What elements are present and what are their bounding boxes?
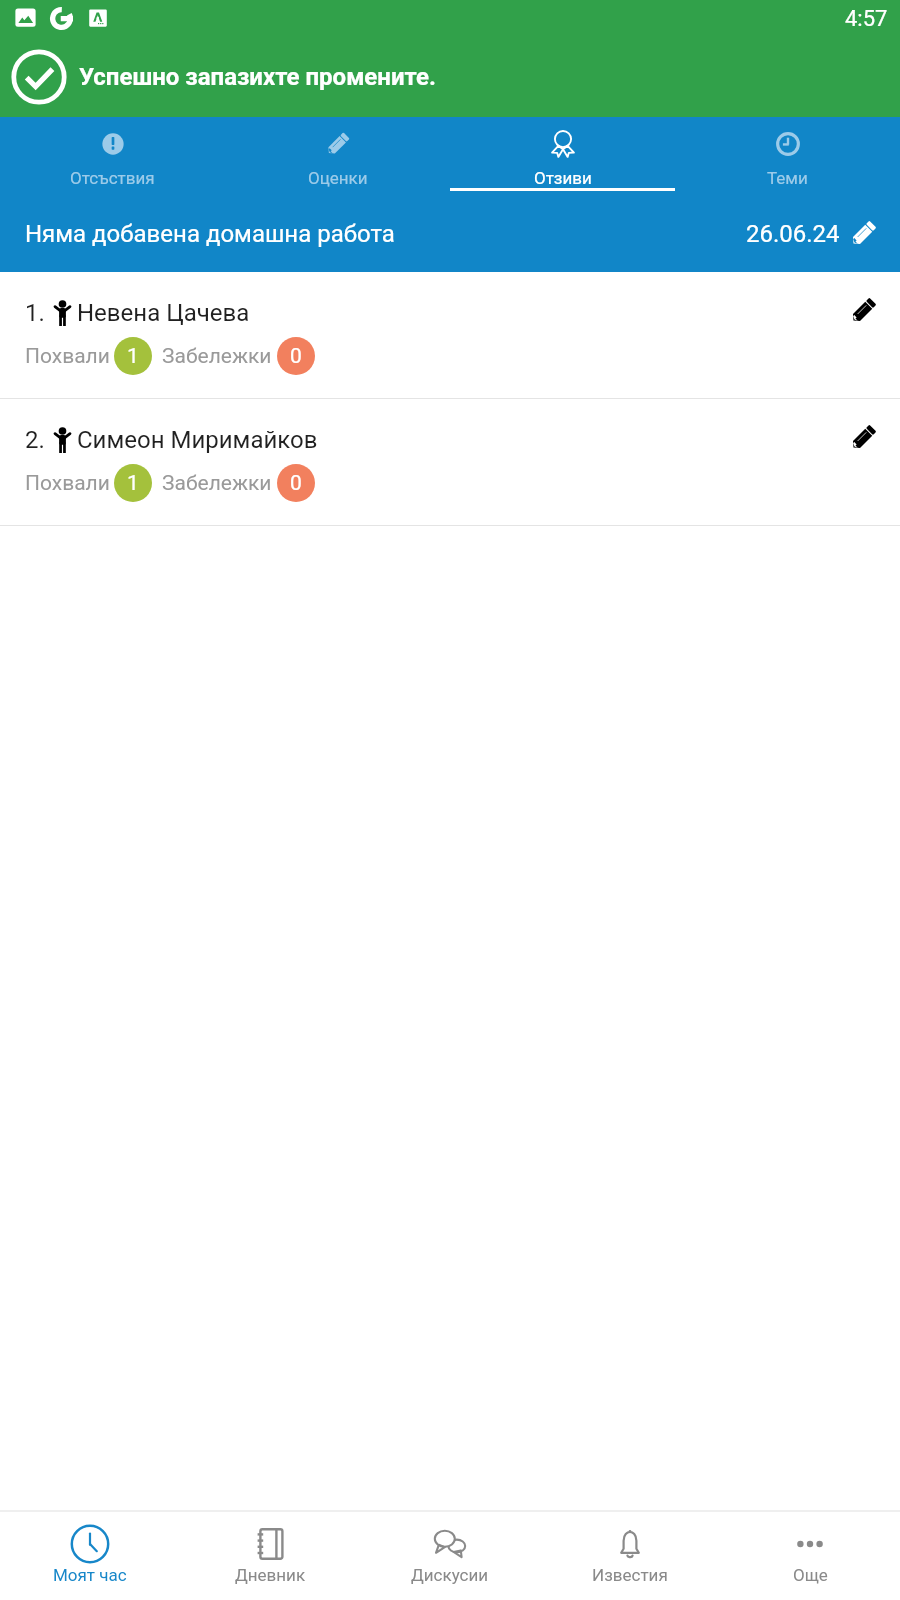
staticText: Похвали: [25, 344, 110, 369]
button[interactable]: Дневник: [180, 1512, 360, 1600]
staticText: Забележки: [162, 471, 272, 496]
button[interactable]: Оценки: [225, 117, 450, 205]
button[interactable]: 1.: [0, 272, 900, 398]
staticText: 0: [290, 344, 302, 369]
button[interactable]: Редактирай: [841, 288, 885, 332]
button[interactable]: Още: [720, 1512, 900, 1600]
staticText: Забележки: [162, 344, 272, 369]
staticText: Няма добавена домашна работа: [25, 220, 395, 248]
button[interactable]: Известия: [540, 1512, 720, 1600]
staticText: 26.06.24: [746, 220, 840, 248]
staticText: Моят час: [53, 1565, 127, 1585]
button[interactable]: Редактирай: [847, 217, 880, 250]
staticText: 2.: [25, 426, 45, 454]
staticText: Теми: [767, 168, 808, 188]
staticText: Отзиви: [534, 168, 592, 188]
button[interactable]: Отзиви: [450, 117, 675, 205]
staticText: Известия: [592, 1565, 668, 1585]
staticText: Дневник: [235, 1565, 306, 1585]
button[interactable]: Отсъствия: [0, 117, 225, 205]
staticText: Оценки: [308, 168, 368, 188]
staticText: Симеон Миримайков: [77, 426, 318, 454]
staticText: 1: [127, 471, 139, 496]
staticText: Отсъствия: [70, 168, 155, 188]
staticText: Успешно запазихте промените.: [79, 63, 436, 91]
button[interactable]: 2.: [0, 399, 900, 525]
staticText: 0: [290, 471, 302, 496]
staticText: 1: [127, 344, 139, 369]
staticText: Похвали: [25, 471, 110, 496]
staticText: Още: [793, 1565, 828, 1585]
staticText: 4:57: [845, 6, 888, 32]
staticText: Дискусии: [411, 1565, 489, 1585]
staticText: 1.: [25, 299, 45, 327]
button[interactable]: Дискусии: [360, 1512, 540, 1600]
button[interactable]: Моят час: [0, 1512, 180, 1600]
button[interactable]: Редактирай: [841, 415, 885, 459]
button[interactable]: Теми: [675, 117, 900, 205]
staticText: Невена Цачева: [77, 299, 250, 327]
